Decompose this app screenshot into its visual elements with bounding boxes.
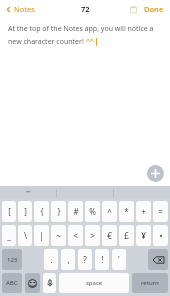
button[interactable]: Notes <box>3 2 37 16</box>
button[interactable]: ? <box>78 249 92 270</box>
staticText: ' <box>118 254 120 265</box>
button[interactable]: € <box>102 225 117 246</box>
staticText: At the top of the Notes app, you will no… <box>8 24 154 34</box>
staticText: } <box>57 206 61 217</box>
staticText: * <box>124 206 129 217</box>
button[interactable]: { <box>34 201 49 222</box>
button[interactable]: } <box>51 201 66 222</box>
button[interactable]: + <box>136 201 151 222</box>
button[interactable]: Done <box>142 1 166 17</box>
button[interactable]: ! <box>95 249 109 270</box>
button[interactable]: ABC <box>2 273 22 293</box>
staticText: £ <box>124 230 129 241</box>
button[interactable]: = <box>153 201 168 222</box>
staticText: # <box>73 206 79 217</box>
staticText: “” <box>26 189 31 197</box>
button[interactable]: < <box>68 225 83 246</box>
staticText: ~ <box>56 230 61 241</box>
staticText: ^ <box>107 206 112 217</box>
staticText: < <box>73 230 78 241</box>
button[interactable]: • <box>153 225 168 246</box>
staticText: . <box>50 254 53 265</box>
button[interactable]: ] <box>18 201 32 222</box>
button[interactable]: _ <box>2 225 16 246</box>
staticText: new character counter! <box>8 37 86 47</box>
staticText: return <box>141 279 159 287</box>
button[interactable]: ' <box>112 249 126 270</box>
button[interactable]: \ <box>18 225 32 246</box>
button[interactable]: Backspace <box>148 249 168 270</box>
button[interactable]: “” <box>0 186 56 199</box>
button[interactable]: | <box>34 225 49 246</box>
staticText: _ <box>7 230 11 241</box>
staticText: € <box>107 230 112 241</box>
button[interactable]: * <box>119 201 134 222</box>
staticText: Notes <box>14 4 35 14</box>
staticText: > <box>90 230 95 241</box>
staticText: space <box>86 279 103 287</box>
staticText: = <box>158 206 163 217</box>
staticText: 72 <box>81 4 90 14</box>
button[interactable]: % <box>85 201 100 222</box>
staticText: ? <box>83 254 87 265</box>
staticText: % <box>89 206 96 217</box>
button[interactable]: > <box>85 225 100 246</box>
button[interactable]: space <box>59 273 129 293</box>
button[interactable]: ¥ <box>136 225 151 246</box>
staticText: ¥ <box>141 230 146 241</box>
button[interactable]: , <box>61 249 75 270</box>
staticText: | <box>39 230 44 241</box>
button[interactable]: ^ <box>102 201 117 222</box>
button[interactable]: [ <box>2 201 16 222</box>
staticText: [ <box>8 206 11 217</box>
button[interactable]: Emoji <box>25 273 40 293</box>
staticText: , <box>67 254 70 265</box>
staticText: ^^ <box>86 37 95 47</box>
staticText: 123 <box>7 256 18 264</box>
button[interactable]: # <box>68 201 83 222</box>
button[interactable]: Dictate <box>43 273 56 293</box>
staticText: ABC <box>6 279 18 287</box>
staticText: ] <box>24 206 27 217</box>
staticText: ! <box>101 254 104 265</box>
staticText: + <box>141 206 146 217</box>
staticText: • <box>159 230 163 241</box>
staticText: { <box>40 206 44 217</box>
button[interactable]: Delete note <box>127 3 140 16</box>
button[interactable]: £ <box>119 225 134 246</box>
button[interactable]: Add attachment <box>147 165 164 182</box>
button[interactable]: 123 <box>2 249 22 270</box>
button[interactable]: ~ <box>51 225 66 246</box>
button[interactable]: return <box>132 273 168 293</box>
staticText: Done <box>144 4 164 14</box>
button[interactable]: . <box>44 249 58 270</box>
staticText: \ <box>24 230 27 241</box>
